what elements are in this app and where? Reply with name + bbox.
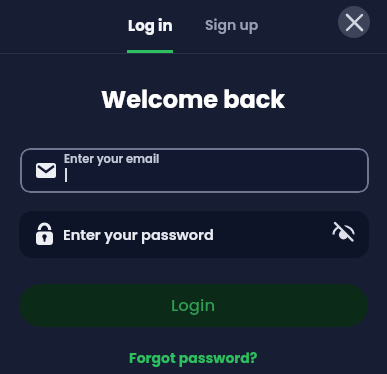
staticText: Login: [171, 294, 216, 317]
staticText: Sign up: [205, 15, 259, 35]
staticText: Forgot password?: [129, 348, 258, 368]
button[interactable]: [332, 221, 355, 244]
button[interactable]: [338, 6, 370, 38]
staticText: Welcome back: [101, 83, 286, 117]
button[interactable]: Login: [19, 284, 368, 327]
button[interactable]: Sign up: [196, 0, 268, 50]
button[interactable]: Enter your password: [19, 211, 369, 258]
staticText: Log in: [128, 15, 173, 36]
button[interactable]: Forgot password?: [0, 346, 387, 370]
button[interactable]: Log in: [112, 0, 188, 50]
staticText: Enter your email: [64, 151, 160, 167]
button[interactable]: Enter your email: [20, 148, 369, 193]
staticText: Enter your password: [63, 225, 214, 245]
